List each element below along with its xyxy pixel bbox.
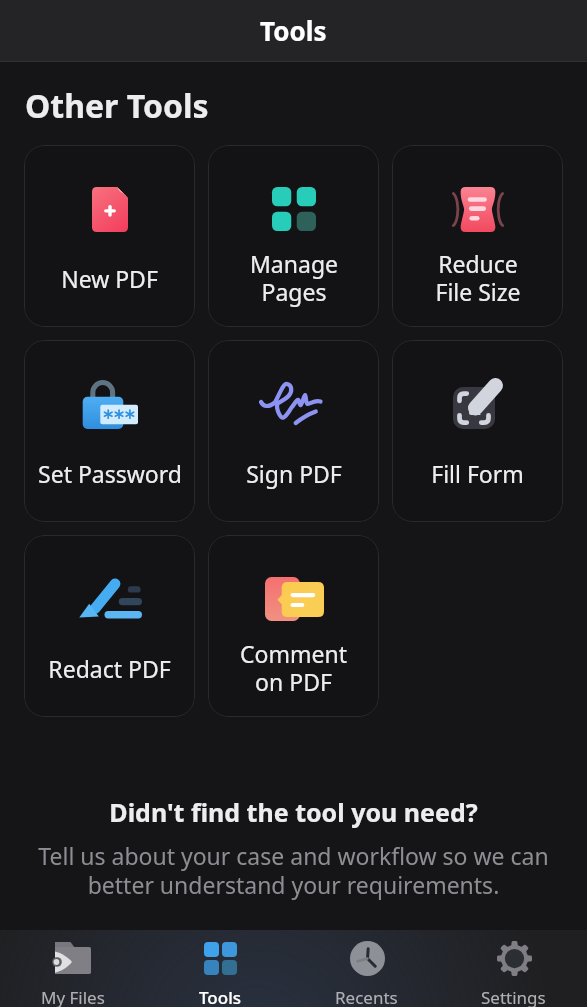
staticText: Tools — [260, 13, 327, 48]
staticText: Manage Pages — [250, 248, 338, 308]
button[interactable]: Manage Pages — [208, 145, 379, 327]
staticText: Tell us about your case and workflow so … — [22, 840, 565, 901]
staticText: My Files — [41, 986, 105, 1007]
staticText: Fill Form — [431, 458, 524, 489]
staticText: Comment on PDF — [240, 638, 347, 698]
button[interactable]: Settings — [440, 930, 587, 1007]
staticText: Didn't find the tool you need? — [109, 795, 478, 829]
button[interactable]: Sign PDF — [208, 340, 379, 522]
button[interactable]: Fill Form — [392, 340, 563, 522]
staticText: Other Tools — [25, 84, 209, 128]
staticText: Settings — [481, 986, 546, 1007]
staticText: Set Password — [38, 458, 182, 489]
button[interactable]: Redact PDF — [24, 535, 195, 717]
button[interactable]: New PDF — [24, 145, 195, 327]
button[interactable]: Recents — [293, 930, 440, 1007]
staticText: Recents — [335, 986, 398, 1007]
staticText: Sign PDF — [246, 458, 342, 489]
staticText: New PDF — [61, 263, 158, 294]
button[interactable]: Tools — [146, 930, 293, 1007]
button[interactable]: Comment on PDF — [208, 535, 379, 717]
staticText: Tools — [199, 986, 241, 1007]
staticText: Redact PDF — [48, 653, 171, 684]
button[interactable]: Reduce File Size — [392, 145, 563, 327]
button[interactable]: My Files — [0, 930, 146, 1007]
button[interactable]: Set Password — [24, 340, 195, 522]
staticText: Reduce File Size — [435, 248, 521, 308]
